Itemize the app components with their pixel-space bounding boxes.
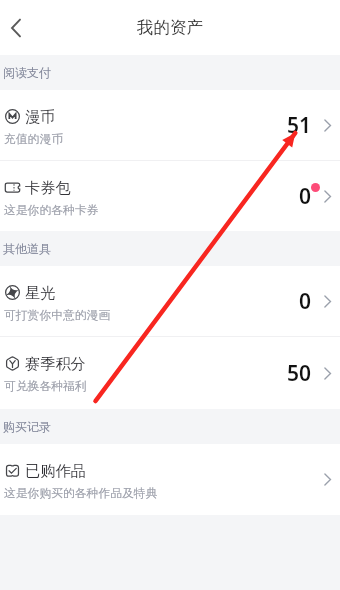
staticText: 我的资产 <box>137 17 203 38</box>
staticText: 0 <box>299 287 312 316</box>
staticText: 充值的漫币 <box>4 132 63 147</box>
staticText: 51 <box>287 111 312 140</box>
button[interactable]: Back <box>0 8 36 48</box>
staticText: 阅读支付 <box>3 65 51 80</box>
button[interactable]: 星光 <box>0 266 340 336</box>
staticText: 可兑换各种福利 <box>4 379 87 394</box>
staticText: 0 <box>299 182 312 211</box>
staticText: 赛季积分 <box>25 354 86 373</box>
staticText: 星光 <box>25 283 56 302</box>
staticText: 购买记录 <box>3 419 51 434</box>
button[interactable]: 卡券包 <box>0 161 340 231</box>
staticText: 其他道具 <box>3 241 51 256</box>
button[interactable]: 已购作品 <box>0 444 340 515</box>
staticText: 这是你的各种卡券 <box>4 203 99 218</box>
staticText: 漫币 <box>25 107 56 126</box>
button[interactable]: 赛季积分 <box>0 337 340 409</box>
staticText: 这是你购买的各种作品及特典 <box>4 486 158 501</box>
staticText: 50 <box>287 359 312 388</box>
button[interactable]: 漫币 <box>0 90 340 160</box>
staticText: 卡券包 <box>25 178 71 197</box>
staticText: 已购作品 <box>25 461 86 480</box>
staticText: 可打赏你中意的漫画 <box>4 308 111 323</box>
